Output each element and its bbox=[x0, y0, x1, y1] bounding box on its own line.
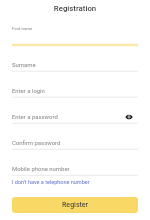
staticText: Enter a login bbox=[12, 87, 45, 94]
button[interactable] bbox=[12, 125, 138, 149]
button[interactable] bbox=[12, 73, 138, 97]
staticText: Enter a password bbox=[12, 113, 58, 120]
staticText: Registration bbox=[0, 4, 150, 220]
staticText: Mobile phone number bbox=[12, 165, 70, 172]
staticText: Confirm password bbox=[12, 139, 61, 146]
button[interactable] bbox=[12, 47, 138, 71]
button[interactable]: I don't have a telephone number bbox=[12, 179, 90, 185]
staticText: Register bbox=[62, 201, 89, 209]
staticText: Surname bbox=[12, 61, 36, 68]
staticText: First name bbox=[12, 26, 33, 31]
button[interactable]: Show password bbox=[124, 112, 134, 121]
button[interactable] bbox=[12, 24, 138, 45]
button[interactable] bbox=[12, 99, 138, 123]
button[interactable]: Register bbox=[12, 197, 138, 213]
staticText: I don't have a telephone number bbox=[12, 179, 90, 185]
button[interactable] bbox=[12, 151, 138, 175]
